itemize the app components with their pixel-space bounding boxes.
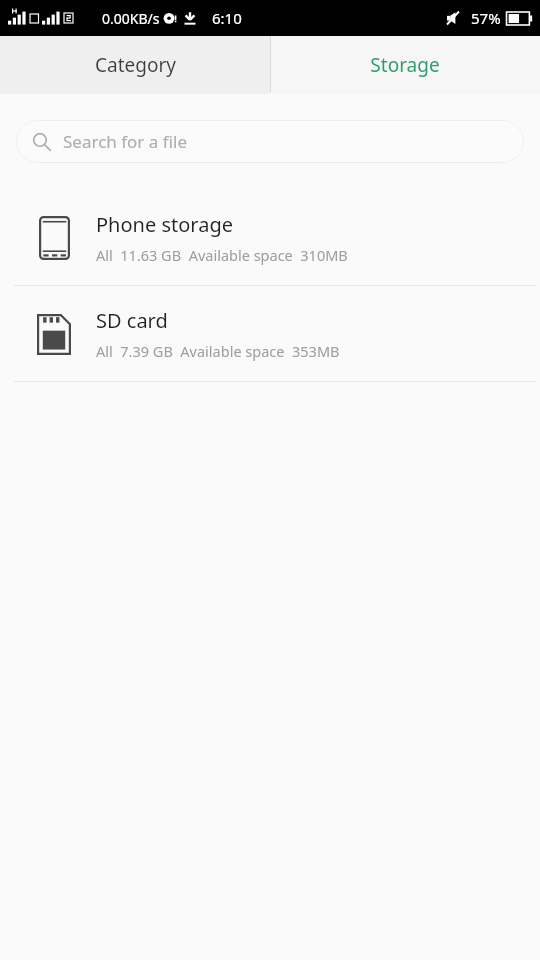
- button[interactable]: Search for a file: [16, 120, 524, 163]
- button[interactable]: Phone storage: [0, 190, 540, 285]
- staticText: 57%: [471, 8, 501, 28]
- staticText: Category: [95, 52, 176, 78]
- staticText: All 7.39 GB Available space 353MB: [96, 341, 340, 361]
- button[interactable]: Category: [0, 36, 270, 94]
- staticText: Storage: [370, 52, 440, 78]
- staticText: 0.00KB/s: [102, 9, 160, 28]
- staticText: All 11.63 GB Available space 310MB: [96, 245, 348, 265]
- staticText: Search for a file: [63, 130, 187, 153]
- button[interactable]: Storage: [270, 36, 540, 94]
- button[interactable]: SD card: [0, 286, 540, 381]
- staticText: SD card: [96, 307, 168, 334]
- staticText: 6:10: [212, 8, 242, 28]
- staticText: Phone storage: [96, 211, 233, 238]
